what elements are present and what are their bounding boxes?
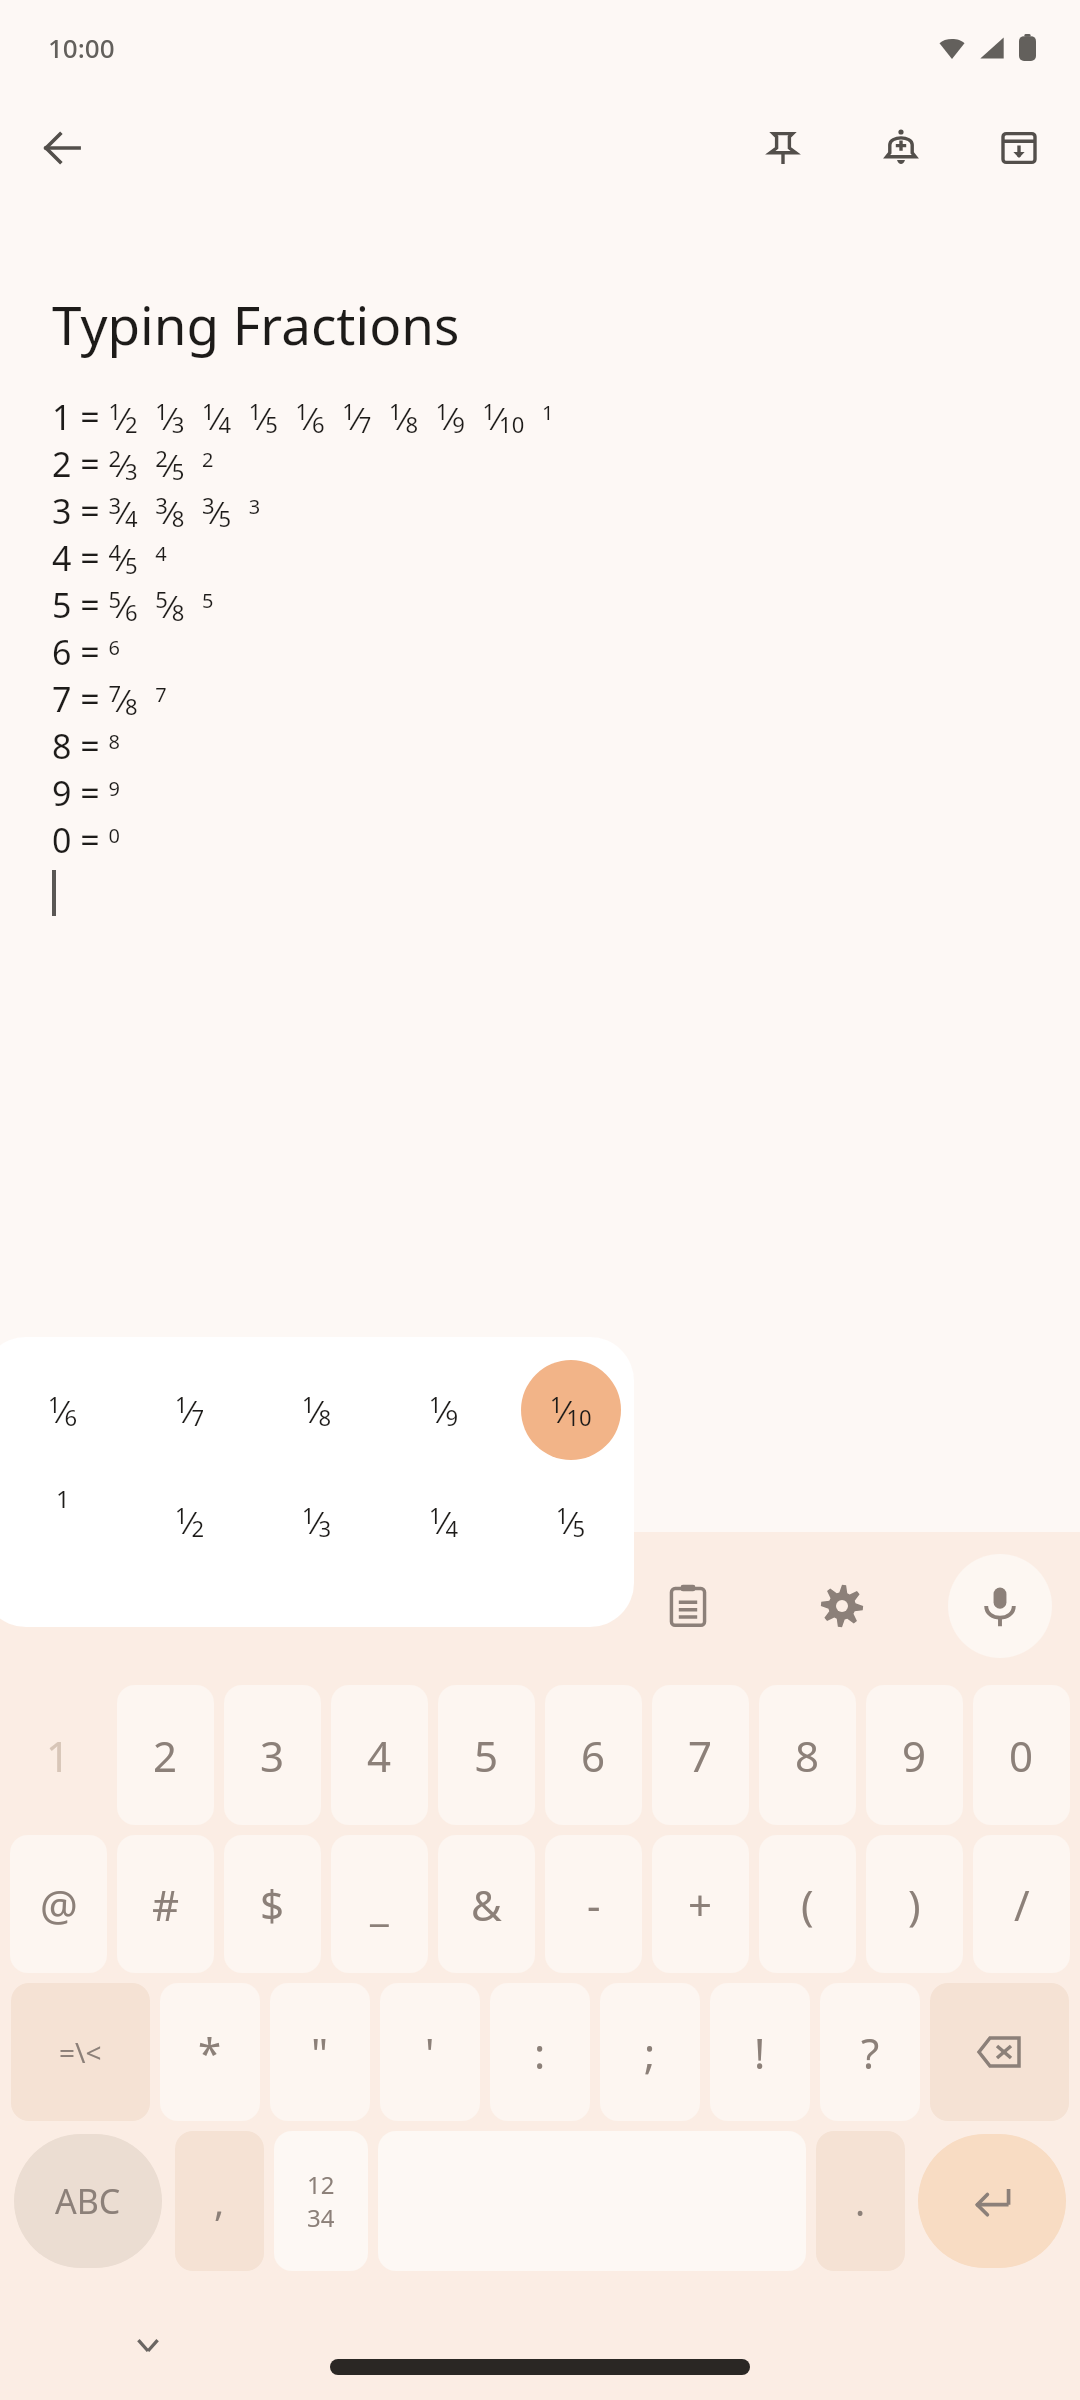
staticText: 12 <box>307 2168 335 2201</box>
button[interactable]: 1⁄9 <box>380 1337 507 1482</box>
staticText: 7 <box>688 1727 713 1784</box>
staticText: 1⁄3 <box>302 1500 332 1543</box>
button[interactable]: ' <box>380 1983 480 2121</box>
button[interactable]: 1⁄3 <box>253 1500 380 1543</box>
button[interactable]: @ <box>10 1835 107 1973</box>
button[interactable]: 1⁄6 <box>0 1337 126 1482</box>
button[interactable]: 1⁄10 <box>507 1337 634 1482</box>
staticText: 8 = 8 <box>52 723 121 769</box>
button[interactable]: . <box>816 2131 905 2271</box>
button[interactable]: ( <box>759 1835 856 1973</box>
staticText: 1⁄7 <box>175 1389 205 1432</box>
staticText: 1⁄8 <box>302 1389 332 1432</box>
staticText: 0 = 0 <box>52 817 121 863</box>
button[interactable]: Clipboard <box>640 1558 736 1654</box>
button[interactable]: 3 <box>224 1685 321 1825</box>
staticText: $ <box>260 1876 285 1933</box>
button[interactable]: 8 <box>759 1685 856 1825</box>
staticText: 2 = 2⁄3 2⁄5 2 <box>52 441 214 487</box>
staticText: ' <box>425 2024 435 2081</box>
button[interactable]: Settings <box>794 1558 890 1654</box>
button[interactable]: , <box>175 2131 264 2271</box>
button[interactable]: 2 <box>117 1685 214 1825</box>
staticText: @ <box>40 1876 78 1933</box>
button[interactable]: Enter <box>918 2134 1066 2268</box>
button[interactable]: _ <box>331 1835 428 1973</box>
staticText: 3 <box>260 1727 285 1784</box>
staticText: Typing Fractions <box>52 288 460 360</box>
staticText: ( <box>801 1876 814 1933</box>
button[interactable]: 7 <box>652 1685 749 1825</box>
button[interactable]: # <box>117 1835 214 1973</box>
staticText: 0 <box>1009 1727 1034 1784</box>
button[interactable]: 1⁄7 <box>126 1337 253 1482</box>
button[interactable]: ? <box>820 1983 920 2121</box>
button[interactable]: - <box>545 1835 642 1973</box>
staticText: 1⁄4 <box>429 1500 459 1543</box>
button[interactable]: 1⁄2 <box>126 1500 253 1543</box>
button[interactable]: 1⁄4 <box>380 1500 507 1543</box>
staticText: : <box>534 2024 546 2081</box>
staticText: 6 <box>581 1727 606 1784</box>
staticText: 10:00 <box>48 30 115 65</box>
button[interactable]: ; <box>600 1983 700 2121</box>
staticText: 2 <box>153 1727 178 1784</box>
button[interactable]: Archive <box>982 111 1056 185</box>
button[interactable]: 0 <box>973 1685 1070 1825</box>
button[interactable]: ! <box>710 1983 810 2121</box>
staticText: 5 <box>474 1727 499 1784</box>
staticText: 9 <box>902 1727 927 1784</box>
staticText: 1 <box>56 1482 70 1515</box>
staticText: 34 <box>307 2201 335 2234</box>
staticText: & <box>471 1876 502 1933</box>
button[interactable]: 12 <box>274 2131 368 2271</box>
button[interactable]: Voice input <box>948 1554 1052 1658</box>
staticText: 8 <box>795 1727 820 1784</box>
staticText: " <box>311 2024 329 2081</box>
button[interactable]: 6 <box>545 1685 642 1825</box>
staticText: . <box>855 2175 866 2227</box>
button[interactable]: 1 <box>10 1685 107 1825</box>
staticText: 4 = 4⁄5 4 <box>52 535 167 581</box>
button[interactable]: 1 <box>0 1482 126 1515</box>
button[interactable]: 4 <box>331 1685 428 1825</box>
staticText: _ <box>370 1876 389 1933</box>
button[interactable]: " <box>270 1983 370 2121</box>
button[interactable]: Hide keyboard <box>118 2315 178 2375</box>
staticText: ? <box>861 2024 880 2081</box>
staticText: 6 = 6 <box>52 629 121 675</box>
staticText: 1⁄9 <box>429 1389 459 1432</box>
staticText: 5 = 5⁄6 5⁄8 5 <box>52 582 214 628</box>
staticText: ABC <box>55 2178 121 2224</box>
button[interactable]: 1⁄8 <box>253 1337 380 1482</box>
button[interactable]: 9 <box>866 1685 963 1825</box>
button[interactable]: Backspace <box>930 1983 1069 2121</box>
staticText: 1⁄2 <box>175 1500 205 1543</box>
staticText: ; <box>644 2024 656 2081</box>
staticText: # <box>152 1876 180 1933</box>
staticText: ! <box>754 2024 766 2081</box>
staticText: , <box>214 2175 225 2227</box>
button[interactable]: & <box>438 1835 535 1973</box>
button[interactable]: : <box>490 1983 590 2121</box>
button[interactable]: + <box>652 1835 749 1973</box>
button[interactable]: $ <box>224 1835 321 1973</box>
button[interactable]: Back <box>24 110 100 186</box>
staticText: + <box>688 1876 713 1933</box>
staticText: 1 <box>46 1727 71 1784</box>
staticText: 1⁄5 <box>556 1500 586 1543</box>
button[interactable]: =\< <box>11 1983 150 2121</box>
staticText: 1 = 1⁄2 1⁄3 1⁄4 1⁄5 1⁄6 1⁄7 1⁄8 1⁄9 1⁄10… <box>52 394 554 440</box>
button[interactable]: * <box>160 1983 260 2121</box>
staticText: 7 = 7⁄8 7 <box>52 676 167 722</box>
staticText: =\< <box>59 2033 102 2071</box>
button[interactable]: ) <box>866 1835 963 1973</box>
staticText: ) <box>908 1876 921 1933</box>
button[interactable]: 5 <box>438 1685 535 1825</box>
button[interactable]: Add reminder <box>864 111 938 185</box>
button[interactable]: Pin <box>746 111 820 185</box>
button[interactable]: / <box>973 1835 1070 1973</box>
button[interactable]: 1⁄5 <box>507 1500 634 1543</box>
button[interactable]: ABC <box>14 2134 162 2268</box>
